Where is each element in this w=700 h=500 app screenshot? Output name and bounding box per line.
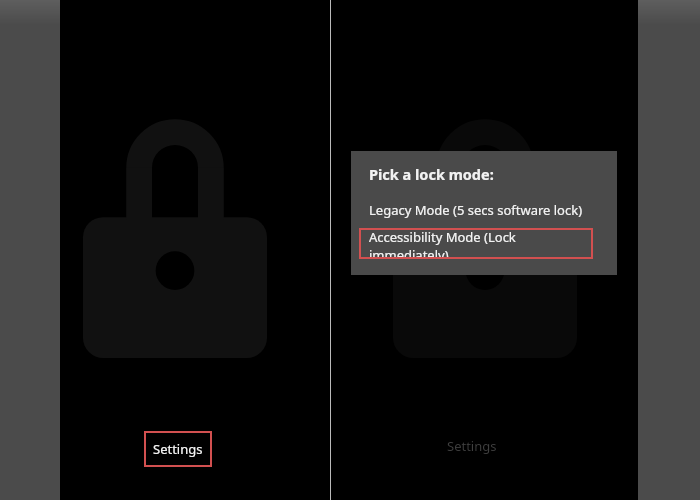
button[interactable]: Accessibility Mode (Lock immediately): [359, 228, 593, 259]
staticText: Pick a lock mode:: [369, 164, 494, 184]
staticText: Settings: [153, 440, 203, 458]
staticText: Legacy Mode (5 secs software lock): [369, 201, 583, 219]
button[interactable]: Settings: [447, 437, 497, 455]
button[interactable]: Legacy Mode (5 secs software lock): [351, 198, 617, 222]
staticText: Settings: [447, 437, 497, 455]
button[interactable]: Settings: [144, 431, 212, 467]
staticText: Accessibility Mode (Lock immediately): [369, 228, 593, 259]
